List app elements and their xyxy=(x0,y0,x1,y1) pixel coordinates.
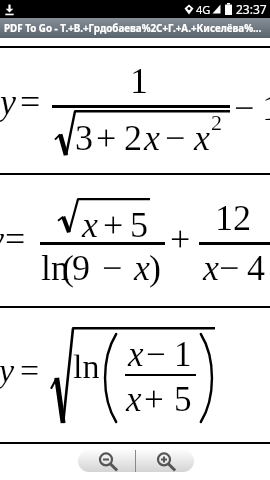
staticText: x xyxy=(82,205,98,245)
staticText: 1 xyxy=(130,61,148,101)
staticText: 5 xyxy=(130,205,148,245)
staticText: ( xyxy=(62,248,74,288)
button[interactable]: PDF To Go - Т.+В.+Грдобаева%2C+Г.+А.+Кис… xyxy=(0,18,270,38)
staticText: 2 xyxy=(211,110,222,134)
button[interactable]: Zoom out xyxy=(78,450,135,472)
staticText: x xyxy=(128,335,144,374)
staticText: ln xyxy=(73,348,100,386)
staticText: 1 xyxy=(174,335,192,374)
staticText: − xyxy=(234,88,255,128)
staticText: 1 xyxy=(262,88,270,128)
staticText: ) xyxy=(149,248,161,288)
staticText: x xyxy=(194,118,210,158)
staticText: + xyxy=(170,219,191,259)
staticText: 23:37 xyxy=(236,1,267,17)
staticText: y xyxy=(0,82,16,122)
staticText: x xyxy=(144,118,160,158)
staticText: 2 xyxy=(124,118,142,158)
staticText: 4 xyxy=(247,248,265,288)
staticText: y xyxy=(0,219,4,259)
staticText: − xyxy=(146,335,166,374)
staticText: x xyxy=(134,248,150,288)
staticText: = xyxy=(5,219,26,259)
button[interactable]: Zoom in xyxy=(136,450,194,472)
staticText: 9 xyxy=(72,248,90,288)
staticText: − xyxy=(165,118,186,158)
staticText: − xyxy=(219,248,240,288)
staticText: = xyxy=(20,82,41,122)
staticText: x xyxy=(203,248,219,288)
staticText: + xyxy=(103,205,124,245)
staticText: 4G xyxy=(196,2,211,17)
staticText: ln xyxy=(41,248,70,288)
staticText: + xyxy=(144,380,164,419)
staticText: 3 xyxy=(75,118,93,158)
staticText: x xyxy=(126,380,142,419)
staticText: PDF To Go - Т.+В.+Грдобаева%2C+Г.+А.+Кис… xyxy=(4,22,262,35)
staticText: + xyxy=(96,118,117,158)
staticText: − xyxy=(102,248,123,288)
staticText: y xyxy=(0,352,15,390)
staticText: = xyxy=(20,352,40,390)
staticText: 12 xyxy=(215,198,251,238)
staticText: 5 xyxy=(174,380,192,419)
